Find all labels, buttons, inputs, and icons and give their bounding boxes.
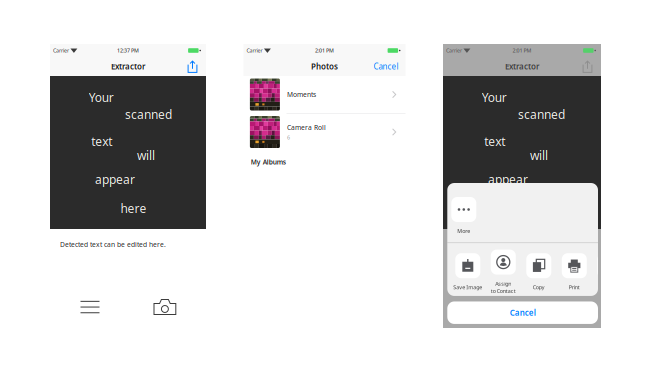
staticText: Photos	[311, 61, 338, 72]
staticText: Carrier	[53, 47, 69, 54]
staticText: Moments	[287, 90, 316, 99]
button[interactable]: More	[449, 197, 479, 235]
staticText: 12:37 PM	[117, 47, 139, 54]
staticText: scanned	[518, 106, 565, 122]
staticText: Carrier	[446, 47, 462, 54]
button[interactable]: Assign	[488, 250, 518, 294]
button[interactable]: Camera Roll	[243, 113, 405, 150]
staticText: My Albums	[251, 157, 286, 166]
staticText: Your	[482, 89, 507, 105]
staticText: text	[91, 133, 112, 149]
button[interactable]: Share	[186, 59, 199, 74]
button[interactable]: Sa	[595, 253, 625, 291]
staticText: will	[137, 147, 155, 163]
staticText: appear	[488, 171, 528, 187]
staticText: text	[484, 133, 505, 149]
staticText: 2:01 PM	[512, 47, 531, 54]
button[interactable]: Cancel	[371, 59, 400, 74]
staticText: Cancel	[510, 307, 536, 318]
staticText: 2:01 PM	[315, 47, 334, 54]
staticText: Save Image	[453, 284, 482, 291]
staticText: More	[457, 227, 470, 235]
staticText: Copy	[533, 284, 545, 291]
button[interactable]: Cancel	[447, 301, 598, 324]
button[interactable]: Print	[559, 253, 589, 291]
button[interactable]: Moments	[243, 76, 405, 113]
staticText: Your	[89, 89, 114, 105]
button[interactable]: Menu	[67, 293, 113, 321]
button[interactable]: Camera	[142, 293, 188, 321]
button[interactable]: Save Image	[453, 253, 483, 291]
staticText: will	[530, 147, 548, 163]
staticText: Assign	[495, 280, 511, 287]
staticText: Detected text can be edited here.	[60, 240, 166, 249]
staticText: to Contact	[491, 287, 516, 294]
staticText: Camera Roll	[287, 123, 326, 132]
staticText: Cancel	[373, 61, 398, 72]
staticText: Print	[569, 284, 580, 291]
button[interactable]: Copy	[524, 253, 554, 291]
staticText: Extractor	[111, 61, 145, 72]
staticText: scanned	[125, 106, 172, 122]
staticText: 6	[287, 134, 290, 141]
staticText: here	[121, 200, 147, 216]
staticText: Carrier	[246, 47, 262, 54]
staticText: Extractor	[505, 61, 539, 72]
staticText: appear	[95, 171, 135, 187]
